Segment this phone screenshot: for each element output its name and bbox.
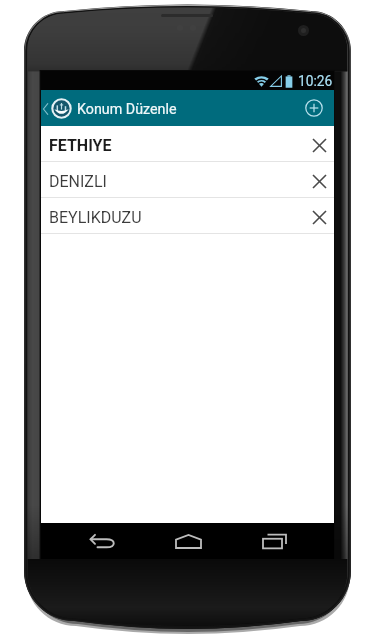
other: Back <box>43 102 48 116</box>
button[interactable]: Remove DENIZLI <box>306 168 332 194</box>
button[interactable]: BEYLIKDUZU <box>41 198 334 234</box>
button[interactable]: Back <box>41 98 72 119</box>
staticText: Konum Düzenle <box>77 101 177 118</box>
staticText: BEYLIKDUZU <box>49 208 142 227</box>
button[interactable]: FETHIYE <box>41 126 334 162</box>
button[interactable]: Add location <box>296 90 332 126</box>
button[interactable]: Recent apps <box>231 523 317 559</box>
button[interactable]: Back <box>59 523 145 559</box>
staticText: 10:26 <box>298 73 333 89</box>
staticText: FETHIYE <box>49 136 112 155</box>
button[interactable]: Remove FETHIYE <box>306 132 332 158</box>
button[interactable]: Home <box>145 523 231 559</box>
staticText: DENIZLI <box>49 172 107 191</box>
button[interactable]: DENIZLI <box>41 162 334 198</box>
button[interactable]: Remove BEYLIKDUZU <box>306 204 332 230</box>
